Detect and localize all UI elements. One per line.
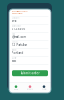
staticText: Profile bbox=[41, 88, 46, 90]
staticText: City/town bbox=[12, 49, 17, 51]
staticText: Quantity bbox=[12, 57, 17, 59]
button[interactable]: Home bbox=[9, 85, 23, 90]
button[interactable]: Orders bbox=[23, 85, 37, 90]
button[interactable]: Address bbox=[12, 40, 48, 48]
staticText: Home bbox=[14, 88, 18, 90]
staticText: 12 Park Ave bbox=[12, 43, 28, 47]
staticText: Mobile number bbox=[12, 25, 22, 27]
staticText: Email bbox=[12, 33, 15, 35]
staticText: fields to continue. bbox=[12, 13, 23, 14]
button[interactable]: Email bbox=[12, 32, 48, 40]
button[interactable]: City/town bbox=[12, 48, 48, 56]
button[interactable]: Submit order bbox=[12, 70, 48, 76]
button[interactable]: Quantity bbox=[12, 56, 48, 64]
staticText: 0123456 bbox=[12, 27, 26, 31]
staticText: Portland bbox=[12, 51, 24, 55]
button[interactable]: Mobile number bbox=[12, 24, 48, 32]
staticText: Address bbox=[12, 41, 19, 43]
staticText: t@mail.com bbox=[12, 35, 26, 39]
staticText: Submit order bbox=[20, 71, 39, 75]
staticText: Please fill in the required bbox=[12, 11, 28, 12]
staticText: Orders bbox=[27, 88, 33, 90]
button[interactable]: Name given bbox=[12, 16, 48, 24]
staticText: Two bbox=[12, 59, 17, 63]
button[interactable]: Profile bbox=[37, 85, 51, 90]
staticText: Name given bbox=[12, 17, 20, 19]
staticText: Test bbox=[12, 19, 17, 23]
